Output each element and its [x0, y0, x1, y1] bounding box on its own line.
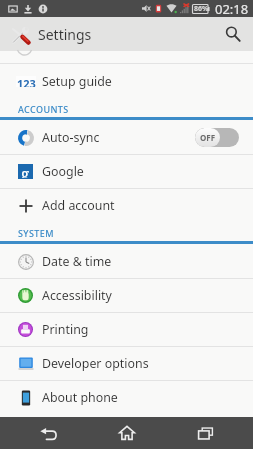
staticText: Printing [42, 321, 253, 338]
button[interactable]: Recents [175, 417, 235, 449]
button[interactable]: About phone [0, 380, 253, 414]
staticText: Settings [38, 25, 92, 44]
button[interactable]: OFF [195, 128, 239, 147]
staticText: OFF [200, 132, 216, 143]
button[interactable]: Developer options [0, 346, 253, 380]
button[interactable]: Printing [0, 312, 253, 346]
staticText: Add account [42, 197, 253, 214]
staticText: Accessibility [42, 287, 253, 304]
button[interactable]: 123 [0, 64, 253, 98]
button[interactable]: Add account [0, 188, 253, 222]
staticText: 02:18 [215, 0, 249, 17]
staticText: ACCOUNTS [18, 103, 69, 115]
staticText: 123 [17, 76, 36, 87]
button[interactable]: Search [213, 17, 253, 51]
staticText: g [21, 163, 30, 178]
staticText: Developer options [42, 355, 253, 372]
staticText: 86% [194, 4, 209, 14]
button[interactable]: Home [97, 417, 157, 449]
staticText: Google [42, 163, 253, 180]
button[interactable]: Back [18, 417, 78, 449]
button[interactable]: Auto-sync [0, 120, 253, 154]
staticText: Setup guide [42, 73, 253, 90]
button[interactable]: Accessibility [0, 278, 253, 312]
staticText: Auto-sync [42, 129, 195, 146]
staticText: SYSTEM [18, 227, 54, 239]
button[interactable]: Date & time [0, 244, 253, 278]
button[interactable]: g [0, 154, 253, 188]
staticText: About phone [42, 389, 253, 406]
staticText: Date & time [42, 253, 253, 270]
